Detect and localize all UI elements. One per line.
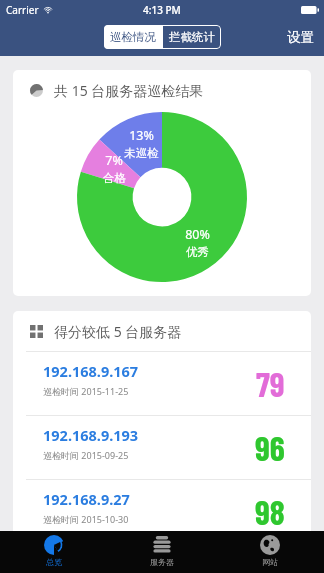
staticText: 7%: [105, 152, 123, 169]
staticText: 4:13 PM: [143, 3, 181, 17]
staticText: 192.168.9.193: [43, 425, 139, 445]
staticText: 总览: [46, 557, 62, 567]
staticText: Carrier: [6, 3, 39, 17]
staticText: 79: [256, 363, 285, 404]
button[interactable]: 192.168.9.167: [13, 352, 311, 415]
staticText: 80%: [185, 226, 210, 243]
staticText: 192.168.9.27: [43, 489, 130, 509]
button[interactable]: 192.168.9.27: [13, 480, 311, 543]
staticText: 服务器: [150, 557, 174, 567]
staticText: 巡检时间 2015-10-30: [43, 513, 129, 525]
button[interactable]: 192.168.9.193: [13, 416, 311, 479]
staticText: 设置: [287, 29, 314, 46]
staticText: 巡检时间 2015-11-25: [43, 385, 129, 397]
button[interactable]: 服务器: [108, 531, 216, 573]
staticText: 192.168.9.167: [43, 361, 139, 381]
button[interactable]: 网站: [216, 531, 324, 573]
staticText: 得分较低 5 台服务器: [54, 322, 182, 341]
staticText: 网站: [262, 557, 278, 567]
staticText: 98: [255, 491, 285, 532]
staticText: 未巡检: [124, 146, 159, 160]
staticText: 巡检情况: [110, 30, 156, 44]
staticText: 巡检时间 2015-09-25: [43, 449, 129, 461]
button[interactable]: 巡检情况: [104, 25, 162, 49]
button[interactable]: 设置: [277, 23, 324, 52]
staticText: 13%: [129, 127, 154, 144]
staticText: 优秀: [186, 245, 209, 259]
button[interactable]: 拦截统计: [163, 25, 221, 49]
staticText: 96: [255, 427, 285, 468]
button[interactable]: 总览: [0, 531, 108, 573]
staticText: 合格: [103, 171, 126, 185]
staticText: 共 15 台服务器巡检结果: [54, 81, 204, 100]
staticText: 拦截统计: [169, 30, 215, 44]
